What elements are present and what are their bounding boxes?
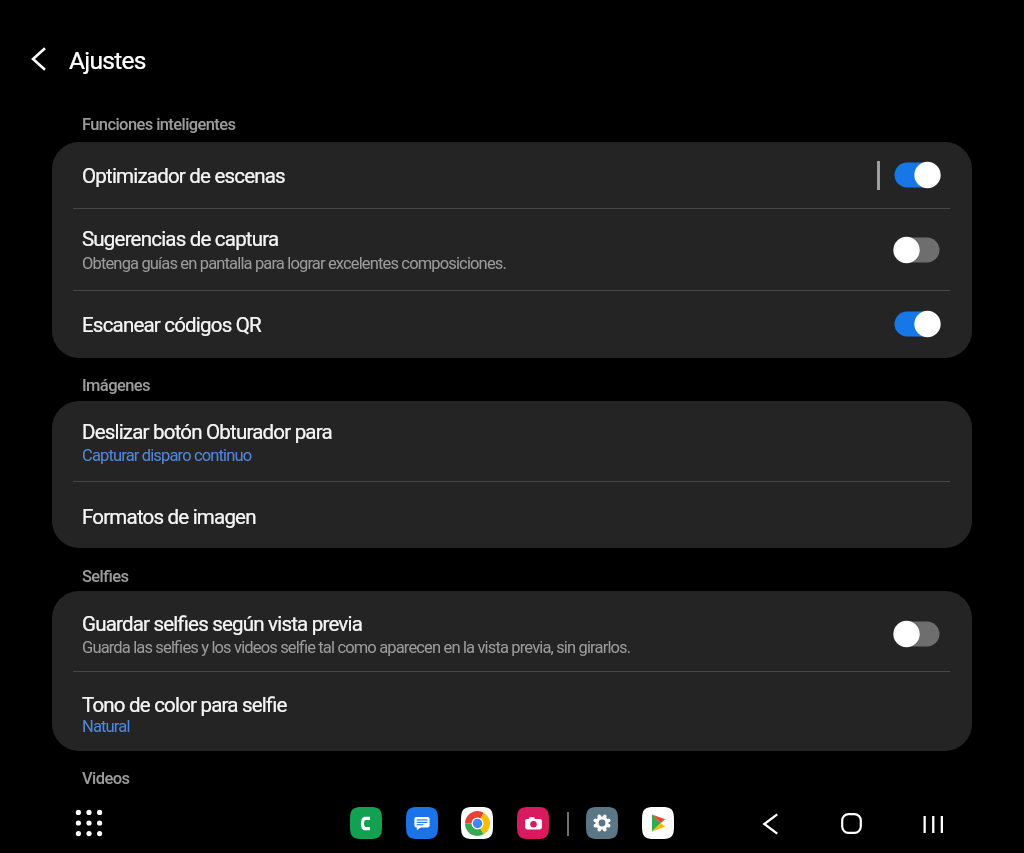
staticText: Optimizador de escenas (82, 164, 285, 188)
staticText: Videos (82, 769, 130, 788)
button[interactable]: Atrás (16, 36, 62, 82)
button[interactable]: Sugerencias de captura (52, 209, 972, 291)
staticText: Imágenes (82, 376, 150, 395)
staticText: Selfies (82, 567, 129, 586)
staticText: Guarda las selfies y los videos selfie t… (82, 638, 631, 657)
staticText: Ajustes (69, 46, 146, 75)
button[interactable]: Ajustes (586, 807, 618, 839)
button[interactable]: Teléfono (350, 807, 382, 839)
button[interactable]: Play Store (642, 807, 674, 839)
button[interactable]: Escanear códigos QR (52, 291, 972, 358)
button[interactable]: Inicio (829, 801, 873, 845)
staticText: Deslizar botón Obturador para (82, 420, 332, 444)
button[interactable]: Recientes (911, 802, 955, 846)
button[interactable]: Mensajes (406, 807, 438, 839)
staticText: Tono de color para selfie (82, 693, 287, 717)
button[interactable]: Formatos de imagen (52, 482, 972, 548)
staticText: Guardar selfies según vista previa (82, 612, 363, 636)
button[interactable]: Cámara (517, 807, 549, 839)
staticText: Formatos de imagen (82, 505, 256, 529)
staticText: Escanear códigos QR (82, 313, 261, 337)
button[interactable]: Desactivado (891, 617, 943, 651)
button[interactable]: Aplicaciones (67, 801, 111, 845)
button[interactable]: Activado (891, 307, 943, 341)
staticText: Funciones inteligentes (82, 115, 236, 134)
staticText: Obtenga guías en pantalla para lograr ex… (82, 254, 506, 273)
button[interactable]: Guardar selfies según vista previa (52, 591, 972, 672)
button[interactable]: Desactivado (891, 233, 943, 267)
button[interactable]: Atrás (749, 802, 793, 846)
button[interactable]: Activado (891, 158, 943, 192)
button[interactable]: Optimizador de escenas (52, 142, 972, 209)
button[interactable]: Deslizar botón Obturador para (52, 401, 972, 482)
staticText: Natural (82, 717, 130, 736)
staticText: Sugerencias de captura (82, 227, 279, 251)
button[interactable]: Tono de color para selfie (52, 672, 972, 751)
staticText: Capturar disparo continuo (82, 446, 252, 465)
button[interactable]: Chrome (461, 807, 493, 839)
